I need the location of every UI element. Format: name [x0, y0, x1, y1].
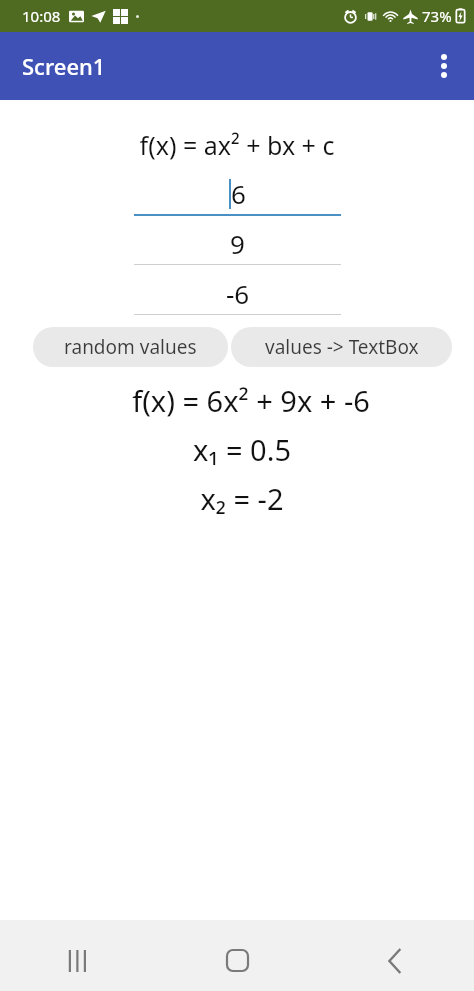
staticText: 73%: [422, 6, 452, 26]
button[interactable]: Back: [316, 930, 474, 991]
staticText: 6: [231, 176, 246, 211]
staticText: Screen1: [22, 51, 106, 81]
button[interactable]: 6: [134, 172, 341, 222]
staticText: random values: [64, 334, 197, 360]
button[interactable]: Home: [158, 930, 316, 991]
staticText: f(x) = ax² + bx + c: [0, 128, 474, 162]
staticText: x₂ = -2: [10, 479, 474, 518]
button[interactable]: Recent apps: [0, 930, 158, 991]
button[interactable]: values -> TextBox: [231, 327, 452, 367]
staticText: 10:08: [22, 6, 61, 26]
button[interactable]: -6: [134, 272, 341, 322]
button[interactable]: 9: [134, 222, 341, 272]
staticText: x₁ = 0.5: [10, 430, 474, 469]
staticText: values -> TextBox: [265, 334, 419, 360]
button[interactable]: random values: [33, 327, 228, 367]
button[interactable]: More options: [420, 42, 468, 90]
staticText: -6: [226, 276, 250, 311]
staticText: f(x) = 6x² + 9x + -6: [28, 381, 474, 420]
staticText: 9: [230, 226, 245, 261]
